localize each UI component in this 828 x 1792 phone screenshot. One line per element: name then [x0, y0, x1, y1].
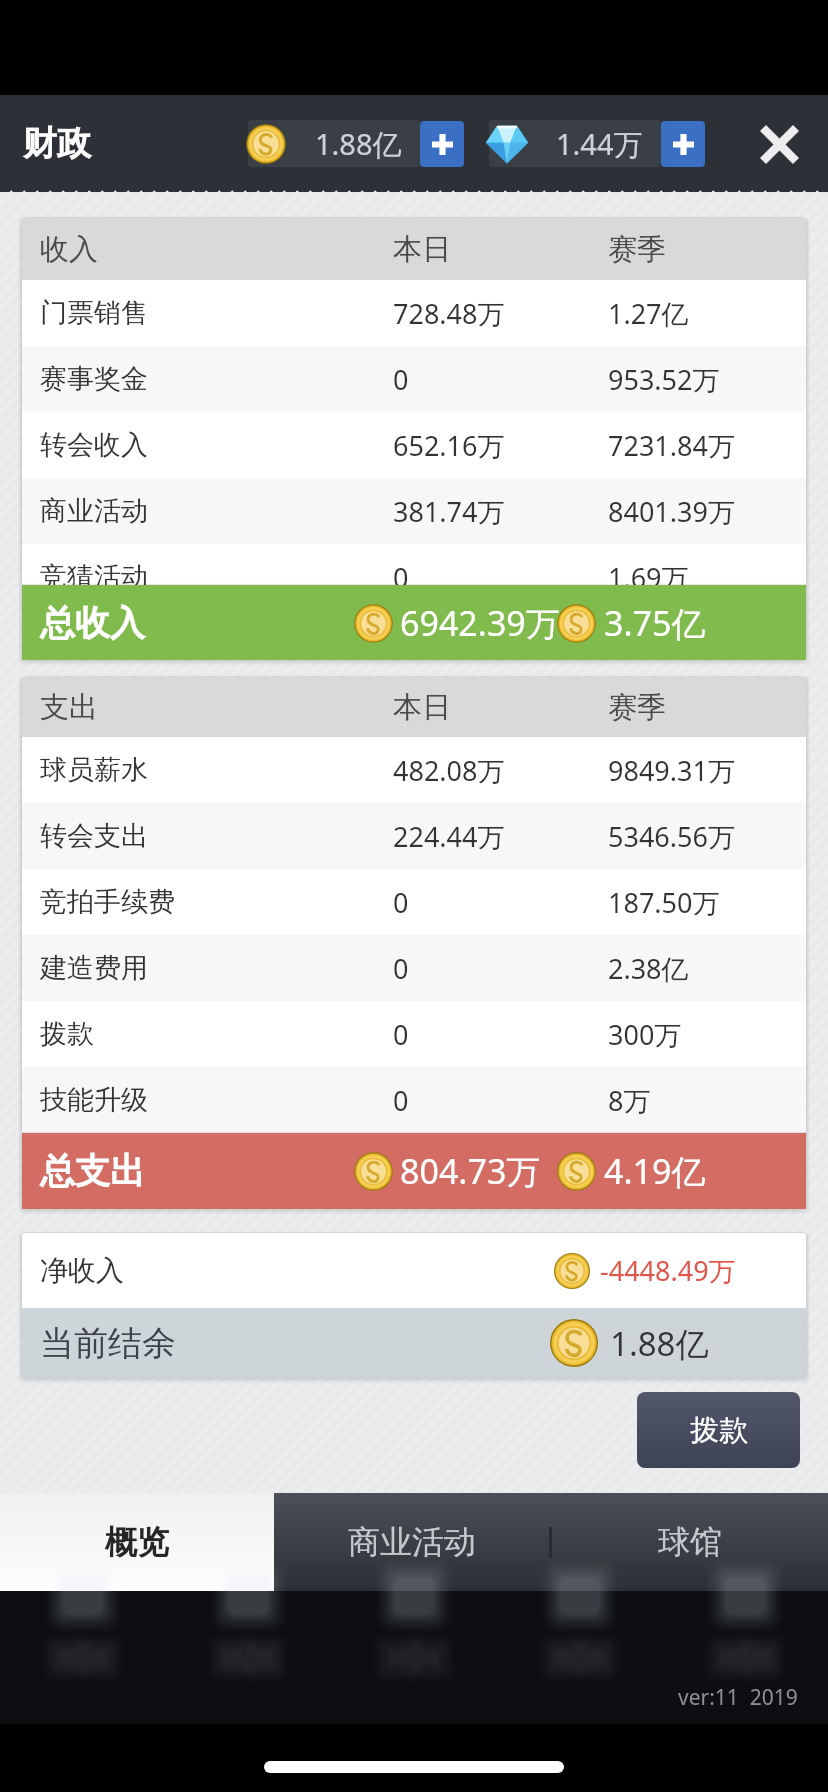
staticText: 收入 [40, 231, 393, 268]
staticText: 0 [393, 1082, 608, 1119]
staticText: 953.52万 [608, 361, 720, 398]
staticText: 3.75亿 [604, 600, 706, 646]
button[interactable]: 1.44万 [489, 120, 661, 167]
button[interactable]: 竞拍手续费 [22, 869, 806, 935]
staticText: 8万 [608, 1082, 651, 1119]
staticText: 482.08万 [393, 752, 608, 789]
staticText: 9849.31万 [608, 752, 735, 789]
button[interactable]: 总支出 [22, 1133, 806, 1209]
staticText: 转会支出 [40, 819, 393, 853]
staticText: 概览 [105, 1522, 169, 1562]
button[interactable]: 球员薪水 [22, 737, 806, 803]
staticText: 转会收入 [40, 428, 393, 462]
button[interactable]: 建造费用 [22, 935, 806, 1001]
button[interactable]: Add [420, 121, 464, 167]
staticText: 球员薪水 [40, 753, 393, 787]
button[interactable]: 门票销售 [22, 280, 806, 346]
staticText: 门票销售 [40, 296, 393, 330]
staticText: 当前结余 [40, 1322, 176, 1365]
button[interactable]: 商业活动 [274, 1493, 549, 1591]
staticText: 总支出 [40, 1149, 145, 1193]
button[interactable]: 转会支出 [22, 803, 806, 869]
staticText: 竞拍手续费 [40, 885, 393, 919]
staticText: 赛季 [608, 689, 666, 726]
staticText: 0 [393, 361, 608, 398]
staticText: -4448.49万 [600, 1252, 806, 1289]
staticText: 竞猜活动 [40, 560, 393, 585]
staticText: 1.88亿 [315, 124, 402, 164]
staticText: 300万 [608, 1016, 682, 1053]
staticText: 5346.56万 [608, 818, 735, 855]
button[interactable]: 当前结余 [22, 1308, 806, 1378]
staticText: 728.48万 [393, 295, 608, 332]
staticText: 1.44万 [556, 124, 643, 164]
staticText: 1.27亿 [608, 295, 689, 332]
staticText: 财政 [23, 122, 91, 165]
button[interactable]: 拨款 [637, 1392, 800, 1468]
staticText: 1.88亿 [610, 1321, 806, 1366]
button[interactable]: 赛事奖金 [22, 346, 806, 412]
button[interactable]: 球馆 [552, 1493, 828, 1591]
staticText: ver:11 2019 [678, 1683, 798, 1712]
staticText: 0 [393, 1016, 608, 1053]
staticText: 技能升级 [40, 1083, 393, 1117]
staticText: 建造费用 [40, 951, 393, 985]
button[interactable]: 拨款 [22, 1001, 806, 1067]
staticText: 本日 [393, 231, 608, 268]
staticText: 拨款 [690, 1412, 748, 1449]
button[interactable]: 1.88亿 [248, 120, 420, 167]
staticText: 224.44万 [393, 818, 608, 855]
staticText: 7231.84万 [608, 427, 735, 464]
staticText: 商业活动 [348, 1522, 476, 1562]
staticText: 支出 [40, 689, 393, 726]
staticText: 652.16万 [393, 427, 608, 464]
button[interactable]: 竞猜活动 [22, 544, 806, 585]
staticText: 本日 [393, 689, 608, 726]
staticText: 总收入 [40, 601, 145, 645]
staticText: 804.73万 [400, 1148, 541, 1194]
button[interactable]: 概览 [0, 1493, 274, 1591]
staticText: 2.38亿 [608, 950, 689, 987]
button[interactable]: Close [746, 111, 812, 177]
button[interactable]: Add [661, 121, 705, 167]
staticText: 6942.39万 [400, 600, 560, 646]
staticText: 赛季 [608, 231, 666, 268]
staticText: 0 [393, 950, 608, 987]
staticText: 拨款 [40, 1017, 393, 1051]
staticText: 0 [393, 559, 608, 585]
staticText: 净收入 [40, 1253, 124, 1288]
staticText: 1.69万 [608, 559, 689, 585]
staticText: 0 [393, 884, 608, 921]
staticText: 4.19亿 [604, 1148, 706, 1194]
staticText: 商业活动 [40, 494, 393, 528]
button[interactable]: 技能升级 [22, 1067, 806, 1133]
staticText: 赛事奖金 [40, 362, 393, 396]
staticText: 381.74万 [393, 493, 608, 530]
button[interactable]: 总收入 [22, 585, 806, 660]
button[interactable]: 转会收入 [22, 412, 806, 478]
staticText: 球馆 [658, 1522, 722, 1562]
button[interactable]: 净收入 [22, 1233, 806, 1308]
staticText: 8401.39万 [608, 493, 735, 530]
button[interactable]: 商业活动 [22, 478, 806, 544]
staticText: 187.50万 [608, 884, 720, 921]
